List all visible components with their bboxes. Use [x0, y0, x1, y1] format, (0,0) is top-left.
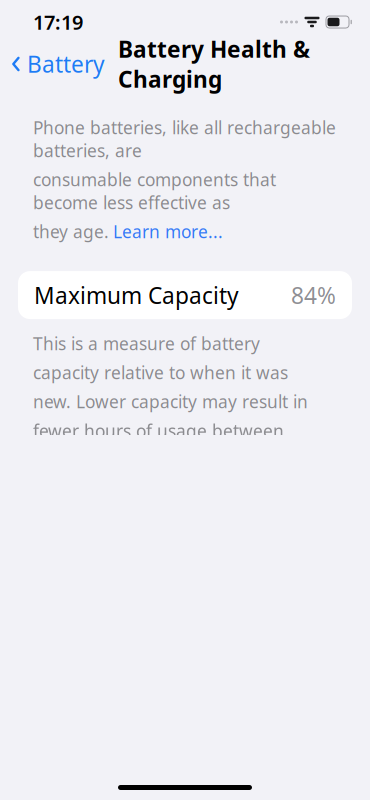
- staticText: Battery Health & Charging: [118, 34, 310, 94]
- staticText: To reduce battery ageing, iPhone learns …: [33, 684, 329, 800]
- staticText: they age.: [33, 220, 109, 243]
- button[interactable]: Learn more...: [113, 220, 223, 243]
- staticText: Learn more...: [113, 220, 223, 243]
- staticText: 17:19: [33, 9, 83, 35]
- button[interactable]: Battery: [0, 43, 105, 85]
- staticText: 84%: [291, 280, 336, 310]
- staticText: Battery: [27, 49, 105, 79]
- staticText: Maximum Capacity: [34, 280, 239, 310]
- staticText: consumable components that become less e…: [33, 168, 276, 214]
- staticText: Phone batteries, like all rechargeable b…: [33, 116, 336, 162]
- staticText: This is a measure of battery capacity re…: [33, 332, 308, 471]
